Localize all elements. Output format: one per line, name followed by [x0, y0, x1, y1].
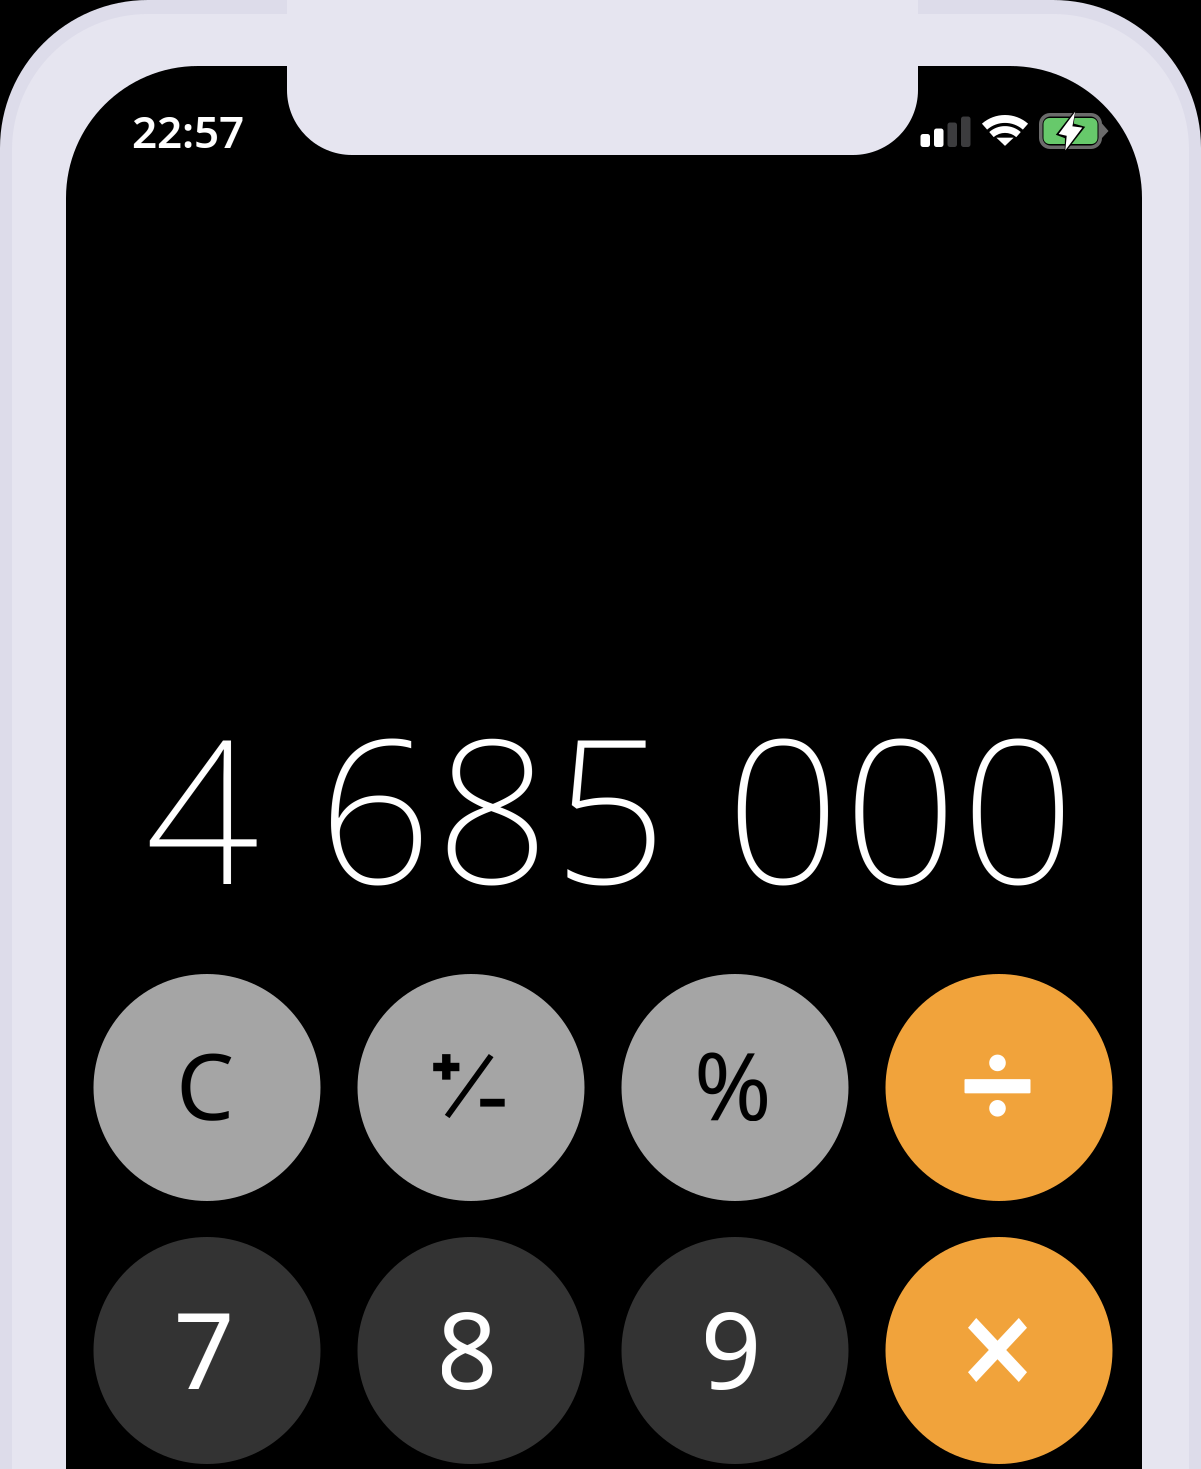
button[interactable]: % [621, 974, 848, 1201]
staticText: 8 [436, 1277, 497, 1418]
staticText: 22:57 [132, 102, 244, 160]
staticText: C [176, 1023, 234, 1145]
button[interactable]: Divide [885, 974, 1112, 1201]
staticText: 7 [173, 1277, 234, 1418]
staticText: % [694, 1022, 772, 1146]
button[interactable]: Plus minus [357, 974, 584, 1201]
button[interactable]: 9 [621, 1237, 848, 1464]
button[interactable]: Multiply [885, 1237, 1112, 1464]
staticText: 9 [700, 1277, 761, 1418]
button[interactable]: 7 [93, 1237, 320, 1464]
button[interactable]: 8 [357, 1237, 584, 1464]
button[interactable]: C [93, 974, 320, 1201]
staticText: 4 685 000 [145, 673, 1075, 939]
